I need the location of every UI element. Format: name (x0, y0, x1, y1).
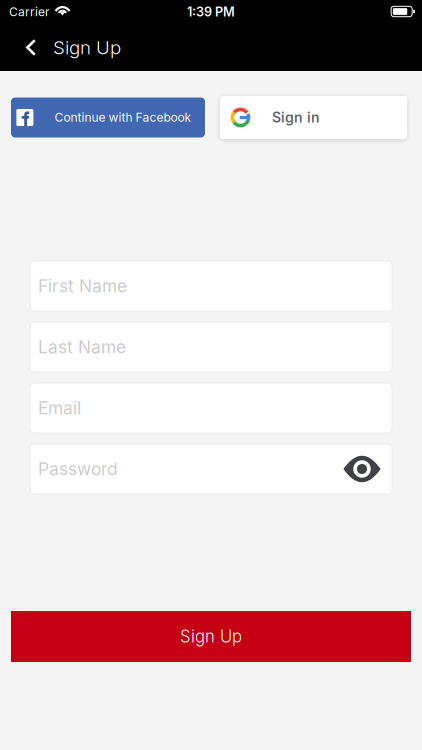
staticText: Carrier (9, 5, 50, 19)
staticText: Sign Up (53, 36, 121, 59)
staticText: Email (38, 397, 81, 418)
button[interactable]: Sign Up (11, 611, 411, 662)
staticText: 1:39 PM (187, 4, 235, 20)
staticText: Continue with Facebook (54, 110, 191, 125)
button[interactable]: Sign in (220, 96, 407, 139)
button[interactable]: Show password (337, 444, 387, 493)
staticText: Sign in (272, 109, 320, 126)
button[interactable]: Continue with Facebook (11, 97, 205, 137)
staticText: Password (38, 458, 118, 479)
staticText: Sign Up (180, 626, 242, 647)
staticText: First Name (38, 275, 127, 296)
staticText: Last Name (38, 336, 126, 357)
button[interactable]: Back (0, 26, 53, 69)
